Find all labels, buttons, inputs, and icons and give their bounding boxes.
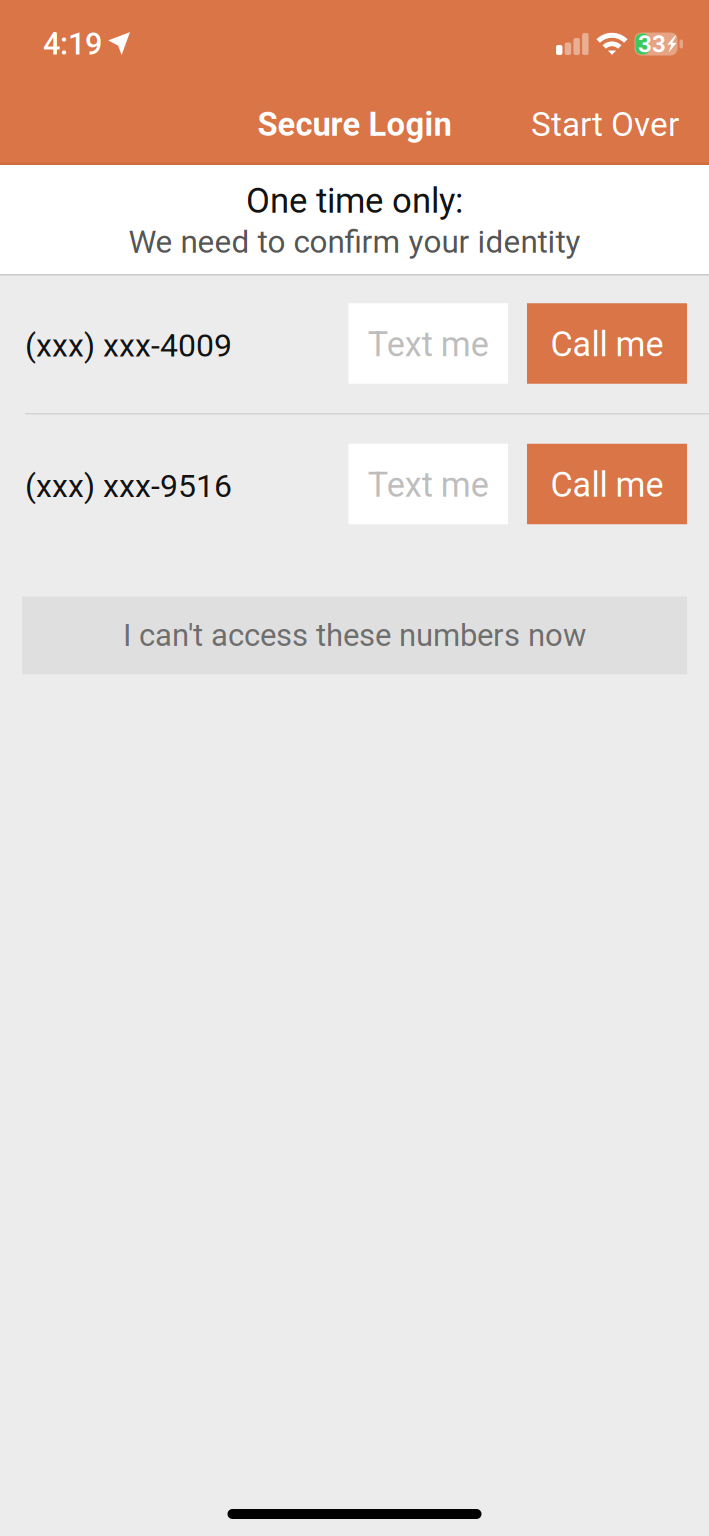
button[interactable]: Start Over — [509, 94, 709, 158]
staticText: We need to confirm your identity — [128, 224, 580, 260]
button[interactable]: I can't access these numbers now — [22, 596, 687, 674]
staticText: Start Over — [531, 105, 679, 144]
staticText: 4:19 — [43, 26, 102, 62]
button[interactable]: Call me at (xxx) xxx-4009 — [527, 303, 687, 384]
staticText: Text me — [368, 324, 489, 364]
staticText: (xxx) xxx-9516 — [25, 467, 232, 505]
button[interactable]: Call me at (xxx) xxx-9516 — [527, 444, 687, 524]
staticText: Text me — [368, 465, 489, 505]
staticText: (xxx) xxx-4009 — [25, 327, 232, 364]
staticText: Call me — [550, 465, 663, 505]
staticText: Secure Login — [257, 105, 451, 144]
staticText: 33 — [638, 30, 666, 58]
button[interactable]: Text me at (xxx) xxx-9516 — [348, 444, 508, 524]
staticText: One time only: — [246, 181, 463, 221]
button[interactable]: Text me at (xxx) xxx-4009 — [348, 303, 508, 384]
staticText: I can't access these numbers now — [123, 617, 586, 654]
staticText: Call me — [550, 324, 663, 364]
